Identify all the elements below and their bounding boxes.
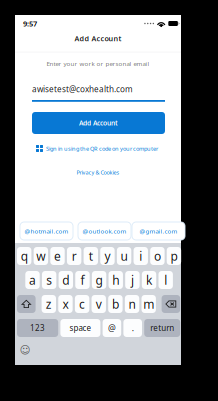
staticText: awisetest@coxhealth.com xyxy=(32,83,133,95)
button[interactable]: @gmail.com xyxy=(132,222,185,240)
staticText: m xyxy=(143,296,154,312)
staticText: f xyxy=(80,272,84,288)
staticText: e xyxy=(54,248,61,264)
staticText: c xyxy=(79,296,85,312)
button[interactable]: . xyxy=(123,319,142,337)
staticText: Sign in using the QR code on your comput… xyxy=(46,145,158,152)
staticText: ☺ xyxy=(19,344,30,356)
staticText: q xyxy=(21,248,28,264)
button[interactable]: b xyxy=(108,295,123,313)
staticText: u xyxy=(121,248,128,264)
staticText: k xyxy=(146,272,152,288)
button[interactable]: Delete xyxy=(162,295,180,313)
staticText: o xyxy=(154,248,161,264)
button[interactable]: @ xyxy=(103,319,121,337)
button[interactable]: e xyxy=(50,247,65,265)
staticText: v xyxy=(96,296,102,312)
staticText: @gmail.com xyxy=(139,227,177,235)
staticText: z xyxy=(46,296,52,312)
button[interactable]: n xyxy=(125,295,139,313)
button[interactable]: d xyxy=(59,271,73,289)
button[interactable]: s xyxy=(42,271,56,289)
staticText: @outlook.com xyxy=(82,227,126,235)
staticText: j xyxy=(131,272,134,288)
staticText: 9:57 xyxy=(23,18,37,29)
staticText: p xyxy=(170,248,177,264)
staticText: s xyxy=(46,272,52,288)
staticText: t xyxy=(89,248,93,264)
button[interactable]: a xyxy=(25,271,40,289)
button[interactable]: Add Account xyxy=(32,112,165,134)
button[interactable]: q xyxy=(17,247,31,265)
staticText: h xyxy=(112,272,119,288)
button[interactable]: m xyxy=(141,295,156,313)
button[interactable]: j xyxy=(125,271,140,289)
staticText: Privacy & Cookies xyxy=(76,169,119,176)
button[interactable]: r xyxy=(67,247,81,265)
button[interactable]: i xyxy=(133,247,148,265)
staticText: g xyxy=(96,272,103,288)
button[interactable]: Emoji keyboard xyxy=(19,344,30,356)
button[interactable]: k xyxy=(142,271,156,289)
button[interactable]: y xyxy=(100,247,115,265)
staticText: Add Account xyxy=(79,118,118,128)
button[interactable]: Shift xyxy=(17,295,36,313)
button[interactable]: w xyxy=(34,247,48,265)
button[interactable]: h xyxy=(108,271,123,289)
staticText: @hotmail.com xyxy=(24,227,68,235)
button[interactable]: f xyxy=(75,271,90,289)
button[interactable]: space xyxy=(60,319,100,337)
staticText: @ xyxy=(108,322,116,334)
staticText: r xyxy=(72,248,77,264)
button[interactable]: @hotmail.com xyxy=(20,222,73,240)
button[interactable]: l xyxy=(158,271,173,289)
staticText: a xyxy=(29,272,36,288)
button[interactable]: v xyxy=(91,295,106,313)
staticText: w xyxy=(36,248,45,264)
button[interactable]: p xyxy=(167,247,181,265)
staticText: d xyxy=(62,272,69,288)
button[interactable]: x xyxy=(58,295,73,313)
button[interactable]: Privacy & Cookies xyxy=(15,169,181,176)
button[interactable]: return xyxy=(144,319,180,337)
staticText: n xyxy=(128,296,135,312)
staticText: x xyxy=(62,296,68,312)
button[interactable]: z xyxy=(42,295,56,313)
button[interactable]: g xyxy=(92,271,106,289)
staticText: space xyxy=(69,323,91,333)
staticText: y xyxy=(104,248,110,264)
staticText: Add Account xyxy=(74,34,121,43)
button[interactable]: 123 xyxy=(17,319,58,337)
button[interactable]: o xyxy=(150,247,165,265)
staticText: return xyxy=(150,323,174,333)
staticText: b xyxy=(112,296,119,312)
staticText: Enter your work or personal email xyxy=(46,59,149,68)
button[interactable]: Sign in using the QR code on your comput… xyxy=(36,145,181,152)
button[interactable]: t xyxy=(84,247,98,265)
staticText: . xyxy=(132,322,134,334)
button[interactable]: @outlook.com xyxy=(78,222,131,240)
staticText: l xyxy=(164,272,167,288)
staticText: i xyxy=(139,248,142,264)
button[interactable]: c xyxy=(75,295,89,313)
staticText: 123 xyxy=(30,323,45,333)
button[interactable]: u xyxy=(117,247,131,265)
